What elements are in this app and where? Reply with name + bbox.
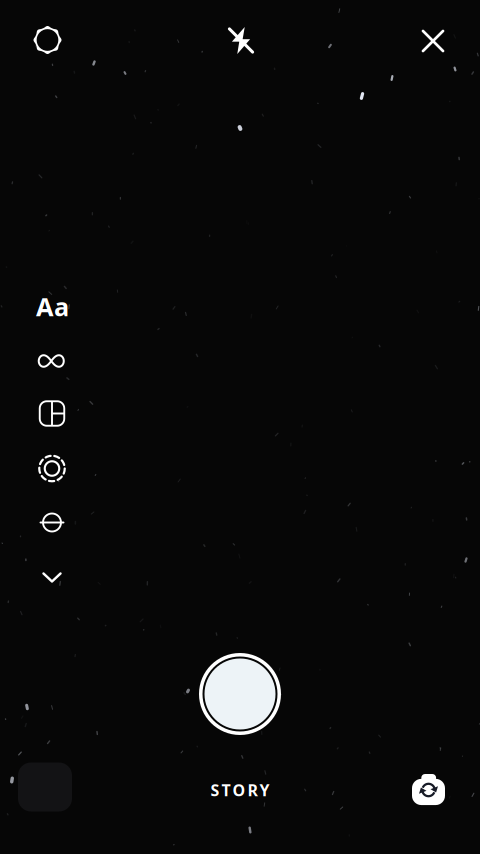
button[interactable]: Flip camera (404, 766, 452, 814)
button[interactable]: Hands-free (29, 446, 75, 490)
button[interactable]: Close (409, 17, 457, 65)
button[interactable]: Superzoom (29, 500, 75, 544)
button[interactable]: Layout (29, 391, 75, 435)
button[interactable]: Gallery (13, 755, 77, 819)
button[interactable]: More modes (29, 555, 75, 599)
button[interactable]: Flash off (217, 16, 265, 64)
staticText: Aa (36, 290, 69, 323)
button[interactable]: Capture (190, 644, 290, 744)
button[interactable]: Settings (23, 16, 71, 64)
button[interactable]: S T O R Y (140, 774, 340, 806)
staticText: S T O R Y (210, 779, 269, 801)
button[interactable]: Boomerang (29, 339, 75, 383)
button[interactable]: Aa (29, 284, 75, 328)
